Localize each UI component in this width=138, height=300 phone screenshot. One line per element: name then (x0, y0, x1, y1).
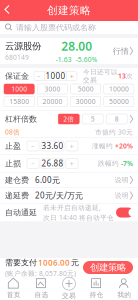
staticText: 持仓 (90, 291, 104, 299)
staticText: 50000 (109, 97, 129, 106)
staticText: 创建策略 (90, 262, 126, 273)
staticText: 市值约 30元 (95, 128, 133, 136)
staticText: 2倍 (63, 115, 74, 123)
staticText: － (29, 159, 36, 168)
staticText: 26.88 (41, 158, 63, 169)
staticText: 20000 (42, 97, 62, 106)
button[interactable]: 10000 (104, 84, 134, 94)
button[interactable]: 8 (106, 114, 127, 124)
staticText: 次日 14:40 将自动平仓 (43, 213, 114, 222)
button[interactable]: 2倍 (58, 114, 79, 124)
staticText: 杠杆倍数 (5, 114, 37, 124)
staticText: 首页 (7, 291, 21, 299)
button[interactable]: 首页 (0, 277, 28, 300)
staticText: 跌幅约 (98, 159, 121, 168)
button[interactable]: 1000 (4, 84, 34, 94)
staticText: 若未开启自动递延, (43, 203, 101, 212)
staticText: 20元/天/万元 (35, 190, 83, 201)
staticText: 自选 (34, 291, 48, 299)
staticText: +20% (115, 142, 133, 150)
button[interactable]: 20000 (37, 96, 67, 106)
staticText: 创建策略 (47, 4, 91, 17)
staticText: － (35, 72, 42, 80)
staticText: 建仓费 (5, 175, 29, 185)
staticText: 08倍 (5, 128, 20, 136)
button[interactable]: 持仓 (83, 277, 110, 300)
staticText: ＋ (68, 142, 75, 150)
staticText: － (29, 142, 36, 150)
staticText: 次 (126, 72, 133, 80)
staticText: 28.00 (61, 38, 92, 54)
staticText: 行情 (113, 46, 129, 56)
button[interactable]: 5000 (70, 84, 101, 94)
button[interactable]: 50000 (104, 96, 134, 106)
button[interactable]: 请输入股票代码或名称 (0, 21, 138, 34)
button[interactable]: Back (0, 5, 20, 15)
staticText: 5 (91, 115, 95, 123)
staticText: 涨幅约 (92, 142, 115, 150)
staticText: ＋ (68, 72, 75, 80)
staticText: 10000 (109, 85, 129, 93)
staticText: -7% (121, 159, 133, 168)
button[interactable]: 说明 (115, 191, 133, 200)
staticText: 8 (115, 115, 119, 123)
staticText: -5.60% (76, 55, 98, 64)
staticText: 1000 (45, 71, 65, 81)
staticText: 交易 (62, 292, 76, 300)
staticText: 自动通延 (5, 208, 37, 217)
staticText: 元 (71, 258, 79, 267)
button[interactable]: 15800 (4, 96, 34, 106)
button[interactable]: Decrease (34, 71, 44, 80)
staticText: 13 (118, 72, 126, 80)
button[interactable]: Decrease (27, 158, 39, 168)
button[interactable]: 5 (82, 114, 103, 124)
staticText: 请输入股票代码或名称 (16, 23, 96, 32)
button[interactable]: 创建策略 (83, 261, 133, 274)
staticText: 3000 (44, 85, 60, 93)
staticText: 30000 (76, 97, 96, 106)
button[interactable]: 我的 (110, 277, 138, 300)
staticText: 15800 (9, 97, 29, 106)
staticText: -1.63 (56, 55, 72, 64)
staticText: 云源股份 (5, 40, 41, 52)
button[interactable]: 自动递延 (116, 207, 133, 217)
staticText: 止盈 (5, 141, 21, 151)
staticText: 我的 (117, 291, 131, 299)
button[interactable]: Increase (67, 71, 77, 80)
staticText: 680149 (5, 53, 29, 62)
staticText: 保证金 (5, 71, 29, 81)
staticText: 说明 (115, 176, 129, 184)
button[interactable]: 行情 (113, 46, 133, 56)
staticText: 6.00元 (35, 175, 60, 185)
staticText: 说明 (115, 191, 129, 200)
staticText: (账户余额: 8,057.80元) (5, 269, 76, 278)
button[interactable]: 交易 (55, 277, 83, 300)
staticText: ＋ (68, 159, 75, 168)
staticText: 1000 (11, 85, 27, 93)
button[interactable]: Decrease (27, 141, 39, 151)
button[interactable]: 说明 (115, 176, 133, 184)
button[interactable]: 3000 (37, 84, 67, 94)
staticText: 1006.00 (38, 257, 70, 268)
button[interactable]: 30000 (70, 96, 101, 106)
button[interactable]: 自选 (28, 277, 55, 300)
button[interactable]: Increase (66, 141, 78, 151)
staticText: 止损 (5, 159, 21, 168)
staticText: 需要支付 (5, 258, 37, 267)
button[interactable]: Increase (66, 158, 78, 168)
staticText: 递延费 (5, 191, 29, 200)
staticText: 5000 (78, 85, 94, 93)
staticText: 33.60 (41, 141, 63, 151)
staticText: 今日还可以交易 (83, 68, 118, 84)
